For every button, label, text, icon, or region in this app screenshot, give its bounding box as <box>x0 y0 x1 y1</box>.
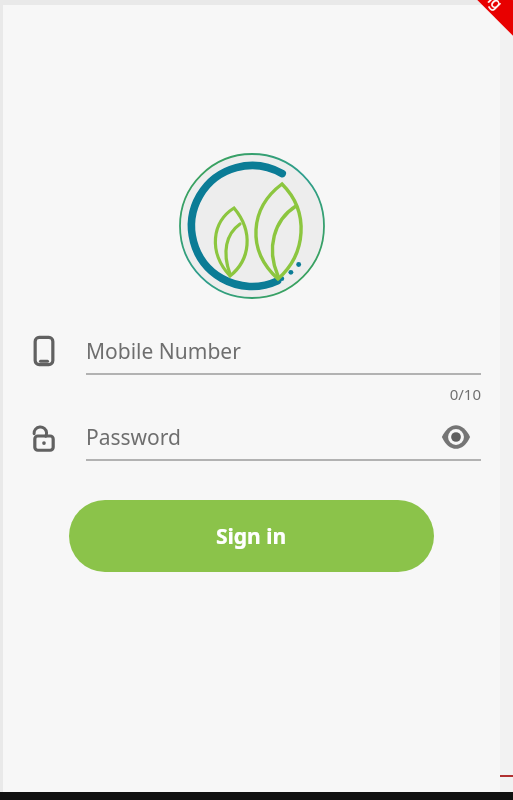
button[interactable]: Sign in <box>69 500 434 572</box>
other: Mobile number <box>27 334 61 368</box>
button[interactable]: Show password <box>436 417 476 457</box>
other: Password <box>27 420 61 454</box>
staticText: Staging <box>455 0 508 13</box>
button[interactable]: Password <box>27 415 476 459</box>
staticText: 0/10 <box>3 384 481 404</box>
staticText: Password <box>86 423 436 452</box>
staticText: Sign in <box>216 522 287 551</box>
staticText: Mobile Number <box>86 337 241 366</box>
button[interactable]: Mobile number <box>27 329 476 373</box>
